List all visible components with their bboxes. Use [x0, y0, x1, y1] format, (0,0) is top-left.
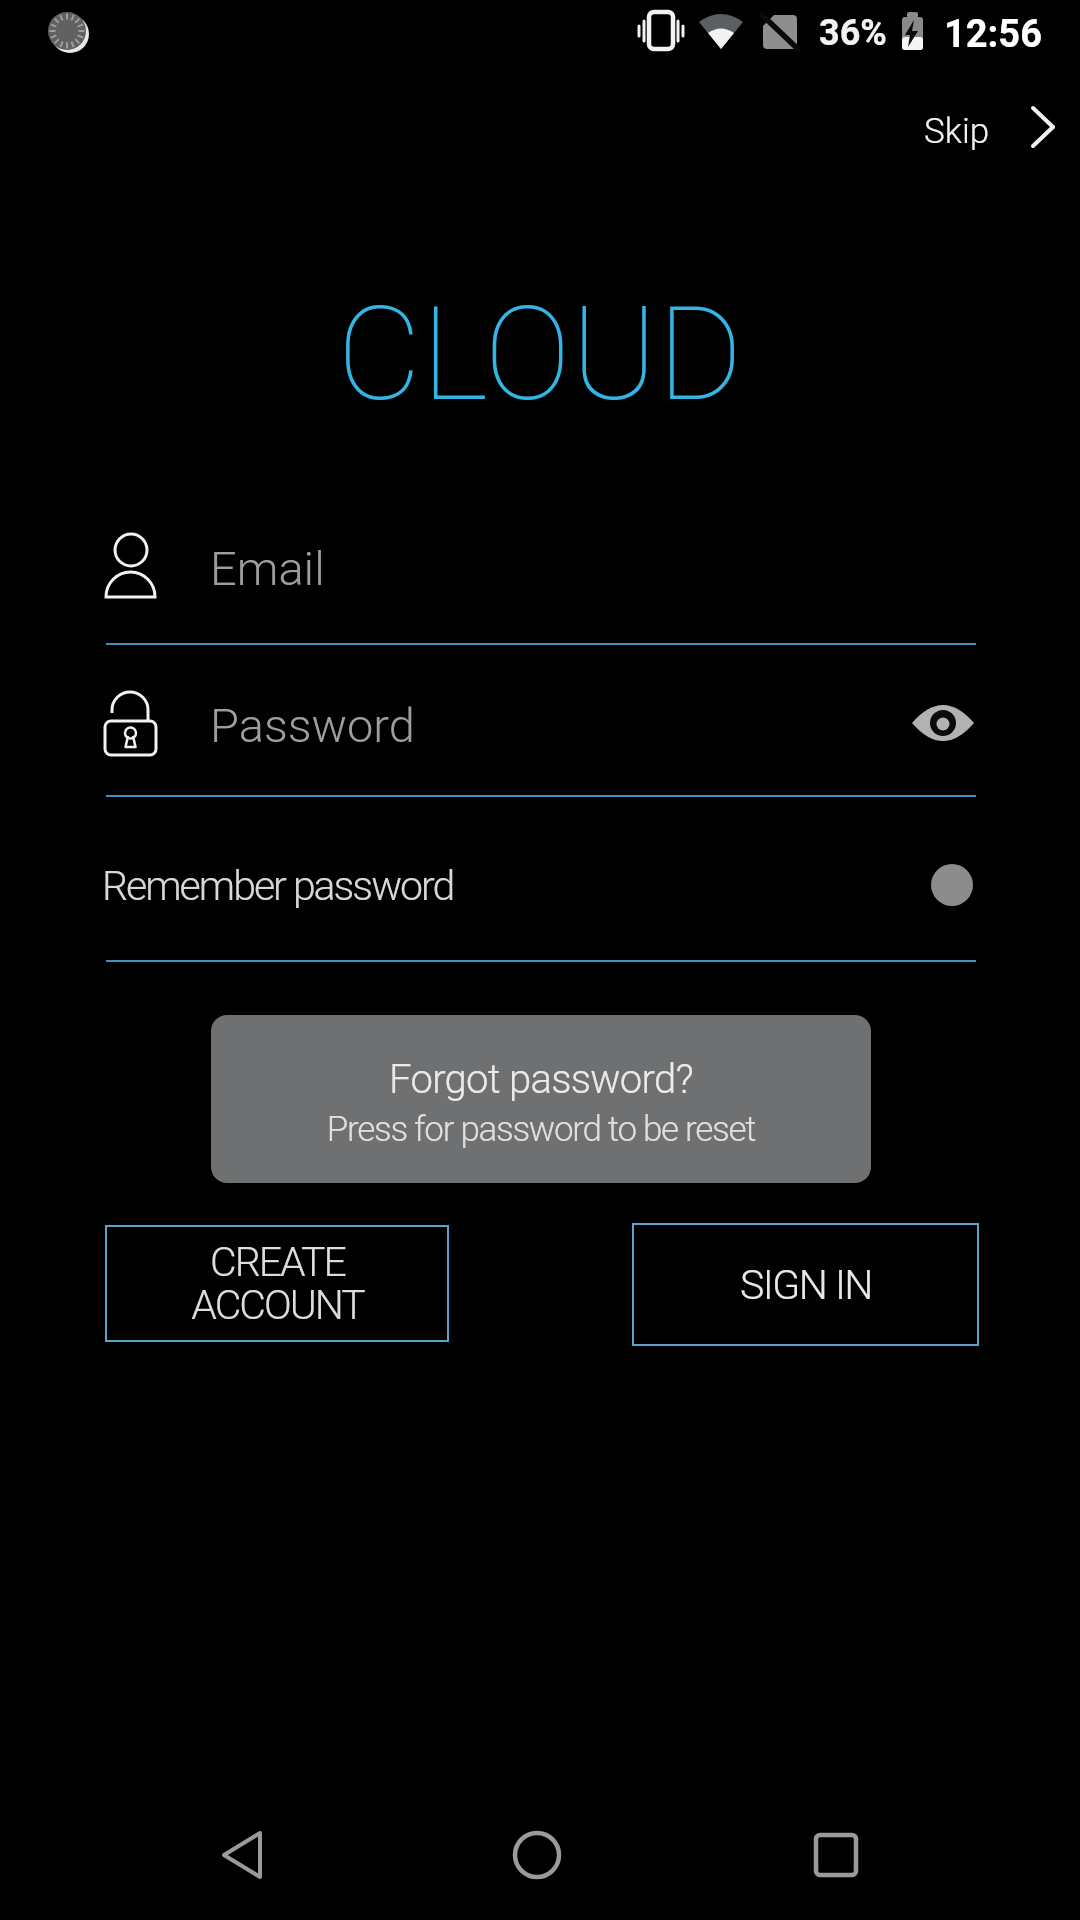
- staticText: CREATE ACCOUNT: [191, 1238, 364, 1329]
- button[interactable]: Email: [106, 520, 976, 620]
- staticText: Forgot password?: [211, 1056, 871, 1103]
- button[interactable]: CREATE ACCOUNT: [105, 1225, 449, 1342]
- staticText: Press for password to be reset: [211, 1109, 871, 1150]
- button[interactable]: [931, 864, 973, 906]
- button[interactable]: [796, 1820, 876, 1890]
- staticText: 12:56: [944, 12, 1042, 57]
- staticText: CLOUD: [337, 278, 743, 430]
- button[interactable]: [497, 1820, 577, 1890]
- staticText: SIGN IN: [740, 1261, 872, 1309]
- button[interactable]: Skip: [900, 98, 1066, 164]
- button[interactable]: Password: [106, 680, 886, 775]
- staticText: Email: [210, 541, 325, 596]
- staticText: 36%: [819, 12, 887, 54]
- staticText: Skip: [924, 111, 990, 152]
- staticText: Remember password: [102, 862, 454, 910]
- button[interactable]: Forgot password?: [211, 1015, 871, 1183]
- button[interactable]: [910, 700, 976, 746]
- staticText: Password: [210, 698, 415, 753]
- button[interactable]: SIGN IN: [632, 1223, 979, 1346]
- button[interactable]: [200, 1820, 284, 1890]
